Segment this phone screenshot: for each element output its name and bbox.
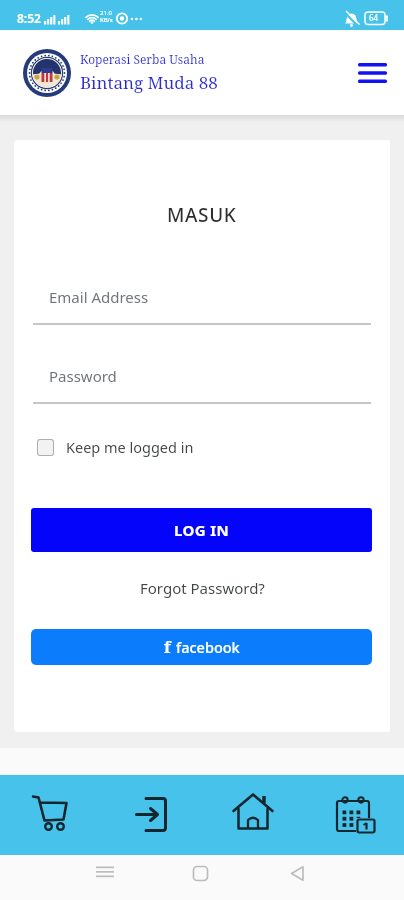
staticText: Koperasi Serba Usaha [80, 51, 205, 67]
staticText: Email Address [49, 287, 149, 307]
staticText: LOG IN [174, 520, 230, 540]
staticText: 21.0 [100, 9, 112, 17]
staticText: Keep me logged in [66, 437, 194, 457]
staticText: Password [49, 366, 117, 386]
button[interactable] [0, 775, 101, 855]
button[interactable] [134, 855, 269, 900]
staticText: Bintang Muda 88 [80, 71, 218, 94]
button[interactable]: Keep me logged in [37, 436, 194, 458]
button[interactable] [348, 49, 396, 97]
button[interactable]: Password [33, 349, 371, 404]
staticText: 8:52 [17, 10, 41, 26]
staticText: 64 [369, 12, 379, 23]
button[interactable] [101, 775, 202, 855]
button[interactable]: f [31, 629, 372, 665]
button[interactable] [0, 855, 134, 900]
button[interactable] [202, 775, 303, 855]
staticText: MASUK [167, 202, 237, 228]
staticText: KB/s [100, 16, 113, 24]
staticText: f [164, 636, 171, 658]
button[interactable]: LOG IN [31, 508, 372, 552]
button[interactable] [269, 855, 404, 900]
staticText: Forgot Password? [140, 578, 265, 598]
staticText: facebook [176, 637, 240, 657]
button[interactable]: Email Address [33, 270, 371, 325]
button[interactable]: Forgot Password? [140, 578, 265, 598]
button[interactable] [303, 775, 404, 855]
